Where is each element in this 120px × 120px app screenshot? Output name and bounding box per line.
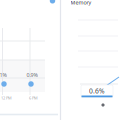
staticText: 0.9% [26,71,37,79]
staticText: 1% [0,71,6,79]
staticText: 6 PM [29,95,38,101]
staticText: Memory [70,0,91,6]
staticText: 0.6% [89,87,105,95]
staticText: 12 PM [1,95,12,101]
